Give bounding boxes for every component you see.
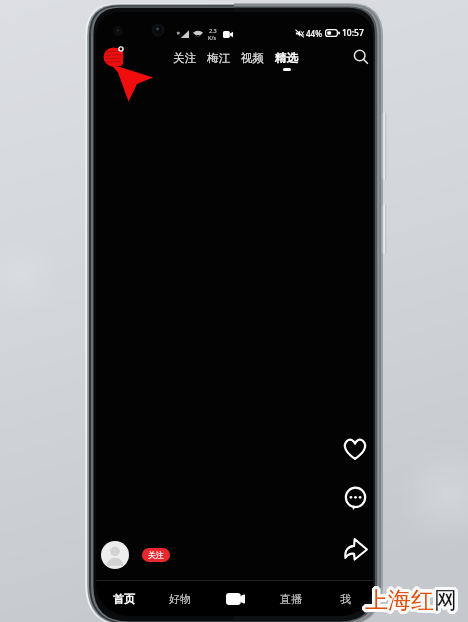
button[interactable]: 首页 [96,581,152,616]
staticText: 上海红网 [365,583,457,612]
staticText: 上海红网 [363,586,455,615]
staticText: 上海红网 [362,585,454,614]
button[interactable]: 好物 [152,581,208,616]
staticText: 44% [306,28,322,39]
staticText: 上海红网 [365,584,457,613]
staticText: 上海红网 [366,587,458,616]
button[interactable]: Record video [208,581,263,616]
staticText: 上海红网 [366,586,458,615]
staticText: 上海红网 [364,584,456,613]
staticText: 上海红网 [364,587,456,616]
staticText: 上海红网 [363,588,455,617]
staticText: 上海红网 [364,585,456,614]
staticText: 上海红网 [364,588,456,617]
button[interactable]: Profile avatar [101,541,129,569]
staticText: 上海红网 [362,587,454,616]
staticText: 上海红网 [368,585,460,614]
staticText: 上海红网 [368,587,460,616]
staticText: 上海红网 [366,585,458,614]
staticText: 好物 [169,592,191,606]
staticText: 关注 [148,550,164,560]
staticText: 上海红网 [365,588,457,617]
button[interactable]: 关注 [173,45,196,68]
staticText: 视频 [241,51,264,65]
button[interactable]: 梅江 [207,45,230,68]
staticText: 关注 [173,51,196,65]
staticText: 上海红网 [364,589,456,618]
button[interactable]: Comment [338,481,372,515]
staticText: 上海红网 [365,589,457,618]
button[interactable]: 关注 [142,548,170,562]
staticText: 首页 [113,592,135,606]
staticText: 上海红网 [365,587,457,616]
staticText: 上海红网 [366,588,458,617]
button[interactable]: 直播 [263,581,318,616]
staticText: 10:57 [342,27,364,39]
staticText: 上海红网 [363,585,455,614]
staticText: 上海红网 [364,586,456,615]
staticText: 上海红网 [367,584,459,613]
staticText: 上海红网 [363,584,455,613]
staticText: 上海红网 [368,586,460,615]
staticText: 直播 [280,592,302,606]
staticText: 上海红网 [367,585,459,614]
button[interactable]: Like [338,432,372,466]
staticText: 梅江 [207,51,230,65]
button[interactable]: 视频 [241,45,264,68]
staticText: 上海红网 [366,583,458,612]
staticText: 网 [434,586,457,615]
staticText: K/s [208,34,217,41]
staticText: 上海红网 [365,585,457,614]
staticText: 我 [340,592,351,606]
staticText: 上海红 [365,586,434,615]
button[interactable]: 精选 [275,45,298,71]
staticText: 上海红网 [363,587,455,616]
staticText: 上海红网 [367,587,459,616]
staticText: 上海红网 [364,583,456,612]
button[interactable]: Search [349,45,373,69]
staticText: 精选 [275,51,298,65]
button[interactable]: 我 [318,581,373,616]
staticText: 上海红网 [365,586,457,615]
staticText: 2.3 [209,27,217,34]
staticText: 上海红网 [362,586,454,615]
staticText: 上海红网 [367,586,459,615]
staticText: 上海红网 [367,588,459,617]
staticText: 上海红网 [366,584,458,613]
button[interactable]: Share [338,532,372,566]
staticText: 上海红网 [366,589,458,618]
